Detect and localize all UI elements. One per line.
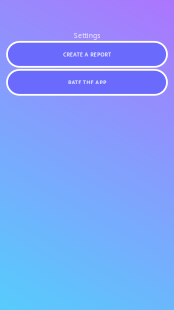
staticText: CREATE A REPORT [63,51,111,58]
staticText: RATE THE APP [68,79,106,86]
button[interactable]: RATE THE APP [7,70,167,95]
button[interactable]: CREATE A REPORT [7,42,167,67]
staticText: Settings [74,31,100,40]
